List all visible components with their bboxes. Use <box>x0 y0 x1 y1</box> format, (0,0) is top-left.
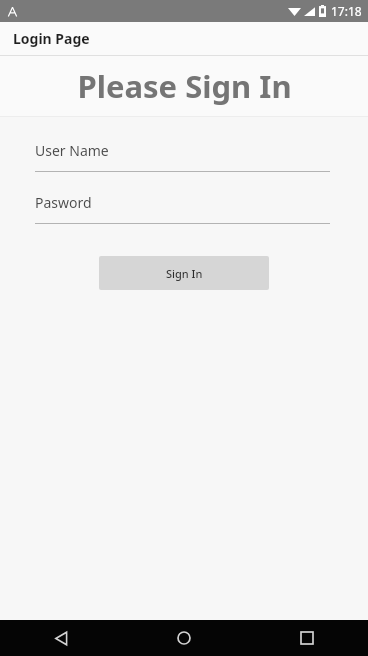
staticText: Pasword <box>35 193 92 212</box>
staticText: Sign In <box>166 266 203 281</box>
button[interactable]: Recent apps <box>245 620 368 656</box>
button[interactable]: Sign In <box>99 256 269 290</box>
button[interactable]: Pasword <box>35 193 330 224</box>
staticText: Please Sign In <box>77 65 292 107</box>
button[interactable]: User Name <box>35 141 330 172</box>
button[interactable]: Home <box>122 620 245 656</box>
staticText: 17:18 <box>331 3 362 19</box>
staticText: Login Page <box>13 29 90 48</box>
staticText: User Name <box>35 141 109 160</box>
button[interactable]: Back <box>0 620 122 656</box>
